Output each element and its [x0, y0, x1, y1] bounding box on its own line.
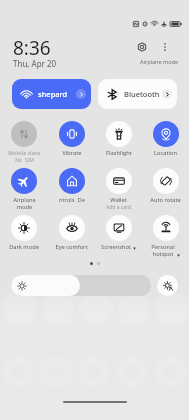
staticText: Mobile data: [8, 149, 40, 157]
button[interactable]: Eye comfort: [48, 212, 95, 251]
button[interactable]: Screenshot: [95, 212, 142, 251]
staticText: Eye comfort: [55, 243, 88, 251]
button[interactable]: Flashlight: [95, 118, 142, 157]
button[interactable]: Mobile data: [0, 118, 48, 164]
staticText: Flashlight: [106, 149, 132, 157]
button[interactable]: More options: [156, 38, 174, 56]
staticText: Airplane mode: [140, 58, 178, 65]
staticText: ntrols De: [59, 196, 85, 204]
staticText: 8:36: [13, 35, 51, 61]
staticText: Location: [154, 149, 177, 157]
staticText: Bluetooth: [124, 89, 162, 99]
button[interactable]: Personal hotspot: [142, 212, 189, 258]
button[interactable]: Airplane mode: [0, 165, 48, 211]
button[interactable]: ntrols De: [48, 165, 95, 204]
staticText: Vibrate: [62, 149, 82, 157]
staticText: Thu, Apr 20: [13, 58, 57, 69]
staticText: Add a card: [106, 204, 131, 211]
button[interactable]: Location: [142, 118, 189, 157]
button[interactable]: Auto rotate: [142, 165, 189, 204]
staticText: Auto rotate: [150, 196, 181, 204]
staticText: Dark mode: [9, 243, 39, 251]
button[interactable]: Vibrate: [48, 118, 95, 157]
button[interactable]: Dark mode: [0, 212, 48, 251]
staticText: No SIM: [15, 157, 34, 164]
staticText: shepard: [38, 89, 76, 99]
button[interactable]: Auto brightness: [157, 275, 178, 296]
staticText: Wallet: [110, 196, 127, 204]
button[interactable]: [11, 275, 151, 296]
staticText: Screenshot: [101, 243, 131, 251]
staticText: Airplane mode: [13, 196, 36, 211]
button[interactable]: Wallet: [95, 165, 142, 211]
button[interactable]: shepard: [12, 79, 91, 109]
button[interactable]: Bluetooth: [98, 79, 177, 109]
button[interactable]: Settings: [133, 38, 151, 56]
staticText: Personal hotspot: [151, 243, 175, 258]
